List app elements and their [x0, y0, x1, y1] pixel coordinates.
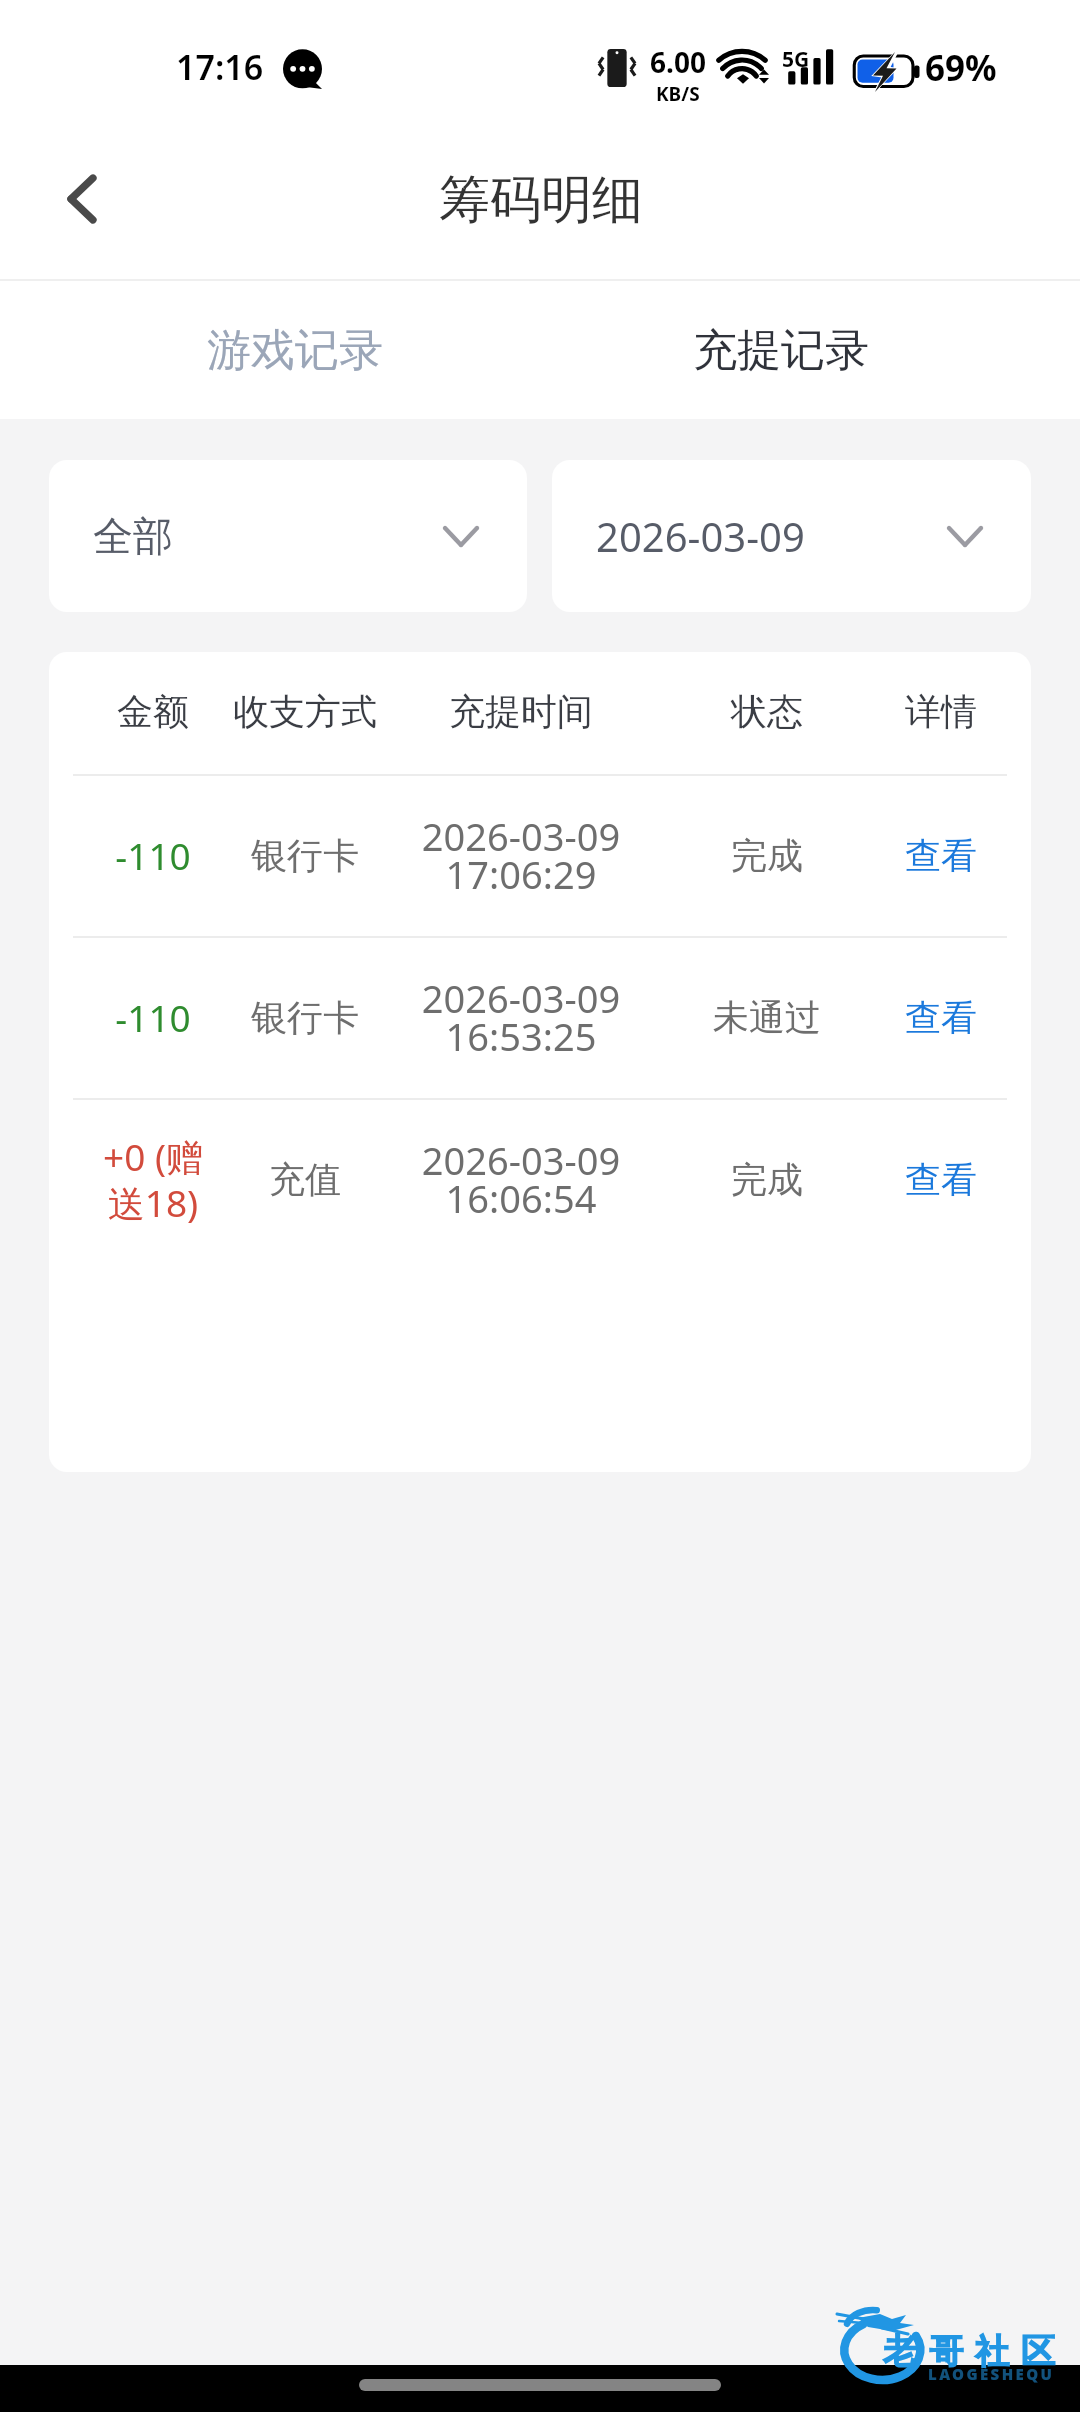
staticText: 2026-03-09 16:53:25 — [396, 972, 646, 1062]
staticText: 金额 — [117, 689, 189, 734]
staticText: 银行卡 — [251, 833, 359, 878]
staticText: LAOGESHEQU — [928, 2364, 1055, 2384]
button[interactable]: 游戏记录 — [145, 281, 445, 419]
staticText: 全部 — [93, 511, 173, 561]
staticText: 查看 — [905, 833, 977, 878]
staticText: 未通过 — [713, 995, 821, 1040]
staticText: -110 — [97, 830, 209, 880]
staticText: KB/S — [656, 81, 700, 107]
button[interactable]: 查看 — [846, 805, 1031, 905]
staticText: 充值 — [269, 1157, 341, 1202]
staticText: 2026-03-09 16:06:54 — [396, 1134, 646, 1224]
staticText: -110 — [97, 992, 209, 1042]
button[interactable]: 2026-03-09 — [552, 460, 1031, 612]
staticText: 2026-03-09 17:06:29 — [396, 810, 646, 900]
staticText: 收支方式 — [233, 689, 377, 734]
staticText: 游戏记录 — [207, 323, 383, 378]
button[interactable]: 查看 — [846, 967, 1031, 1067]
button[interactable]: 全部 — [49, 460, 527, 612]
staticText: 状态 — [731, 689, 803, 734]
staticText: 6.00 — [650, 43, 706, 81]
staticText: 17:16 — [176, 44, 264, 90]
staticText: +0 (赠送18) — [97, 1131, 209, 1228]
button[interactable]: Back — [34, 151, 130, 247]
staticText: 2026-03-09 — [596, 509, 805, 563]
staticText: 查看 — [905, 995, 977, 1040]
button[interactable]: 充提记录 — [631, 281, 931, 419]
staticText: 筹码明细 — [439, 168, 643, 232]
staticText: 银行卡 — [251, 995, 359, 1040]
staticText: 详情 — [905, 689, 977, 734]
button[interactable]: 查看 — [846, 1129, 1031, 1229]
staticText: 69% — [925, 44, 997, 92]
staticText: 完成 — [731, 833, 803, 878]
staticText: 5G — [782, 45, 810, 74]
staticText: 充提时间 — [449, 689, 593, 734]
staticText: 完成 — [731, 1157, 803, 1202]
staticText: 老哥社区 — [877, 2330, 1061, 2373]
staticText: 查看 — [905, 1157, 977, 1202]
staticText: 充提记录 — [693, 323, 869, 378]
